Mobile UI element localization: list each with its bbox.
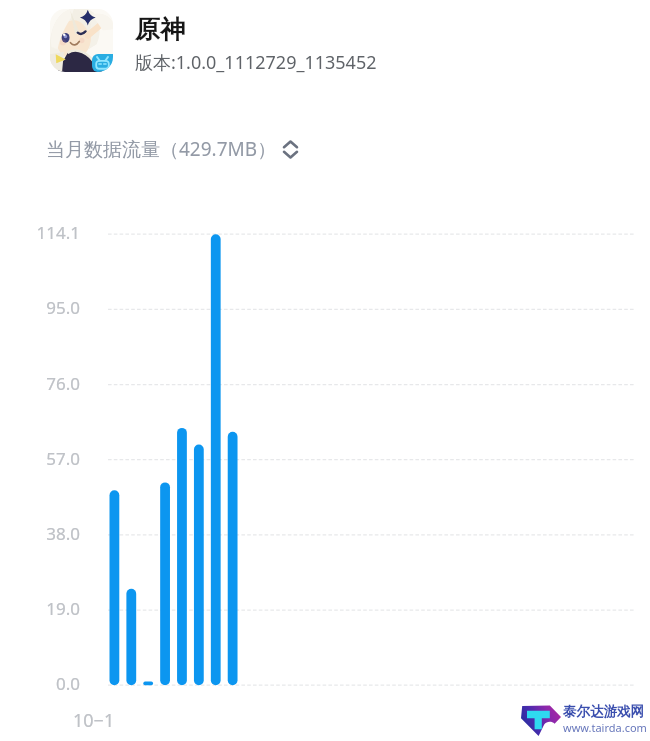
- staticText: 114.1: [0, 221, 80, 244]
- staticText: 95.0: [0, 296, 80, 319]
- staticText: www.tairda.com: [563, 720, 647, 735]
- staticText: 76.0: [0, 372, 80, 395]
- staticText: 版本:1.0.0_1112729_1135452: [135, 50, 377, 75]
- staticText: 泰尔达游戏网: [563, 703, 644, 720]
- other: Change range: [284, 140, 297, 159]
- button[interactable]: 当月数据流量（429.7MB）: [46, 136, 297, 162]
- staticText: 38.0: [0, 522, 80, 545]
- button[interactable]: 原神: [50, 8, 377, 88]
- staticText: 10−1: [73, 708, 115, 733]
- staticText: 原神: [135, 14, 185, 45]
- staticText: 57.0: [0, 447, 80, 470]
- staticText: 0.0: [0, 672, 80, 695]
- staticText: 19.0: [0, 597, 80, 620]
- staticText: 当月数据流量（429.7MB）: [46, 136, 277, 162]
